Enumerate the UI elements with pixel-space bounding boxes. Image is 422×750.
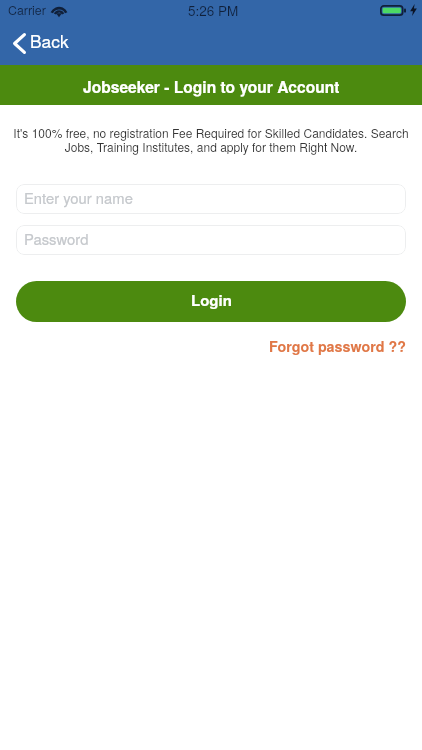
staticText: Login [191, 289, 232, 310]
button[interactable]: Forgot password ?? [269, 330, 422, 362]
staticText: Back [30, 28, 69, 53]
button[interactable]: Enter your name [16, 184, 406, 214]
button[interactable]: Back [0, 27, 81, 60]
button[interactable]: Password [16, 225, 406, 255]
staticText: Password [24, 228, 89, 249]
staticText: It's 100% free, no registration Fee Requ… [13, 124, 409, 156]
staticText: Jobseeker - Login to your Account [83, 75, 340, 97]
staticText: 5:26 PM [188, 1, 239, 20]
staticText: Carrier [8, 1, 46, 19]
button[interactable]: Login [16, 281, 406, 322]
staticText: Enter your name [24, 187, 133, 208]
